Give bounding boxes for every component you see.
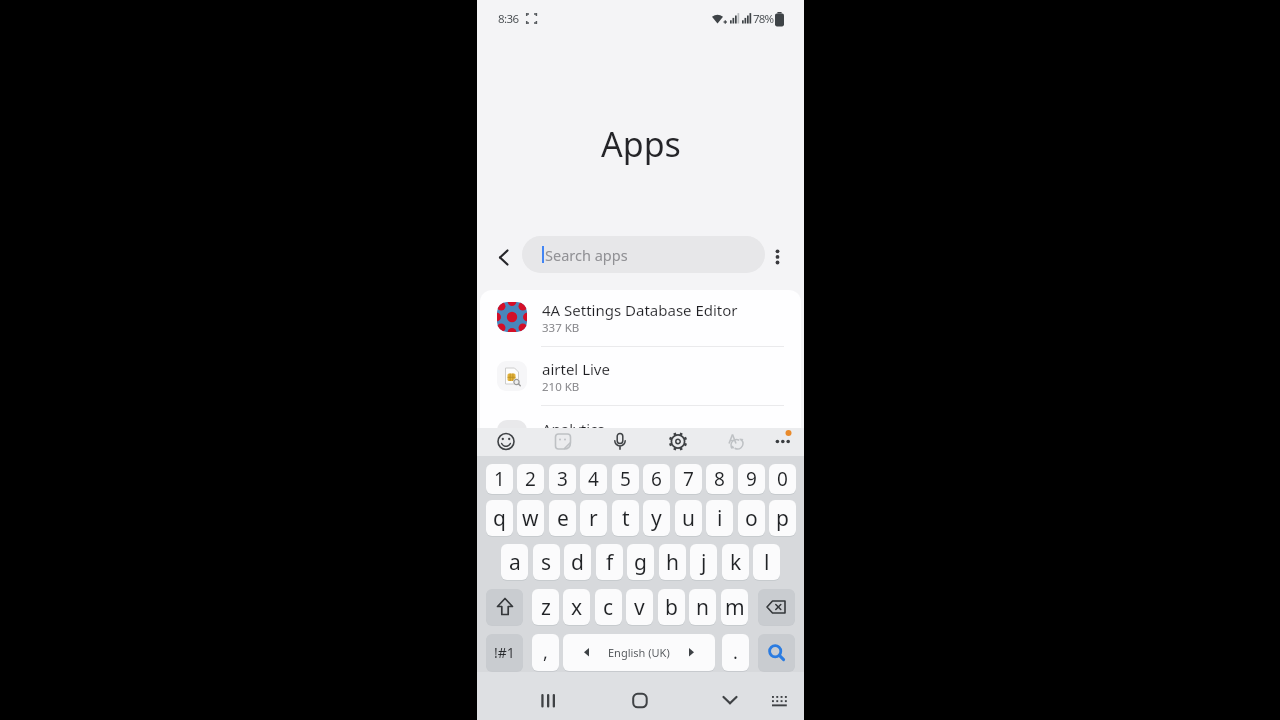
button[interactable]: 0 (769, 464, 796, 494)
button[interactable]: , (532, 634, 559, 671)
button[interactable]: o (738, 500, 765, 536)
button[interactable] (767, 245, 788, 270)
button[interactable]: . (722, 634, 749, 671)
staticText: h (666, 548, 679, 577)
staticText: , (543, 640, 548, 665)
staticText: 210 KB (542, 379, 580, 395)
button[interactable] (758, 634, 795, 671)
staticText: . (733, 640, 738, 665)
staticText: 1 (494, 466, 505, 492)
staticText: d (571, 548, 584, 577)
button[interactable]: l (753, 544, 780, 580)
button[interactable]: 3 (549, 464, 576, 494)
button[interactable] (723, 430, 747, 454)
staticText: 8 (714, 466, 725, 492)
button[interactable] (626, 687, 654, 715)
staticText: o (745, 504, 758, 533)
staticText: w (522, 504, 539, 533)
staticText: 8:36 (498, 11, 519, 27)
button[interactable]: z (532, 589, 559, 625)
staticText: s (541, 548, 552, 577)
button[interactable] (771, 430, 797, 456)
staticText: t (622, 504, 630, 533)
staticText: k (730, 548, 742, 577)
staticText: c (603, 593, 614, 622)
button[interactable]: English (UK) (563, 634, 715, 671)
staticText: m (725, 593, 745, 622)
staticText: q (493, 504, 506, 533)
staticText: 78% (753, 11, 774, 27)
staticText: v (634, 593, 645, 622)
staticText: English (UK) (608, 645, 670, 660)
button[interactable]: y (643, 500, 670, 536)
staticText: Apps (601, 121, 681, 167)
staticText: 2 (525, 466, 536, 492)
button[interactable]: j (690, 544, 717, 580)
staticText: n (696, 593, 709, 622)
button[interactable] (480, 347, 801, 405)
button[interactable] (767, 688, 793, 714)
button[interactable] (491, 247, 515, 269)
button[interactable]: x (563, 589, 590, 625)
staticText: 337 KB (542, 320, 580, 336)
button[interactable] (535, 687, 563, 715)
button[interactable]: b (658, 589, 685, 625)
button[interactable]: e (549, 500, 576, 536)
button[interactable] (716, 687, 744, 715)
button[interactable] (480, 290, 801, 346)
button[interactable]: t (612, 500, 639, 536)
button[interactable]: c (595, 589, 622, 625)
button[interactable]: w (517, 500, 544, 536)
staticText: 4A Settings Database Editor (542, 300, 738, 320)
staticText: 3 (557, 466, 568, 492)
button[interactable]: p (769, 500, 796, 536)
button[interactable]: g (627, 544, 654, 580)
button[interactable]: d (564, 544, 591, 580)
staticText: f (606, 548, 614, 577)
button[interactable]: k (722, 544, 749, 580)
button[interactable]: !#1 (486, 634, 523, 671)
staticText: b (665, 593, 678, 622)
staticText: r (589, 504, 598, 533)
button[interactable]: q (486, 500, 513, 536)
button[interactable] (608, 430, 632, 454)
button[interactable]: n (689, 589, 716, 625)
button[interactable]: h (659, 544, 686, 580)
button[interactable]: r (580, 500, 607, 536)
button[interactable]: 4 (580, 464, 607, 494)
button[interactable]: 2 (517, 464, 544, 494)
button[interactable]: 7 (675, 464, 702, 494)
button[interactable]: f (596, 544, 623, 580)
button[interactable]: Search apps (522, 236, 765, 273)
staticText: u (682, 504, 695, 533)
button[interactable]: u (675, 500, 702, 536)
button[interactable]: a (501, 544, 528, 580)
button[interactable] (551, 430, 575, 454)
button[interactable]: 8 (706, 464, 733, 494)
button[interactable]: 5 (612, 464, 639, 494)
staticText: airtel Live (542, 359, 610, 379)
button[interactable]: s (533, 544, 560, 580)
button[interactable]: i (706, 500, 733, 536)
staticText: g (634, 548, 647, 577)
staticText: 7 (683, 466, 694, 492)
staticText: e (557, 504, 569, 533)
staticText: y (651, 504, 662, 533)
button[interactable]: 6 (643, 464, 670, 494)
button[interactable]: m (721, 589, 748, 625)
staticText: Search apps (545, 245, 628, 265)
staticText: j (701, 548, 707, 577)
button[interactable]: v (626, 589, 653, 625)
staticText: i (717, 504, 723, 533)
button[interactable] (494, 430, 518, 454)
button[interactable] (758, 589, 795, 625)
staticText: 4 (588, 466, 599, 492)
button[interactable]: 9 (738, 464, 765, 494)
staticText: 6 (651, 466, 662, 492)
staticText: l (764, 548, 770, 577)
button[interactable]: 1 (486, 464, 513, 494)
staticText: Analytics (542, 419, 605, 432)
button[interactable] (666, 430, 690, 454)
staticText: a (509, 548, 521, 577)
button[interactable] (486, 589, 523, 625)
